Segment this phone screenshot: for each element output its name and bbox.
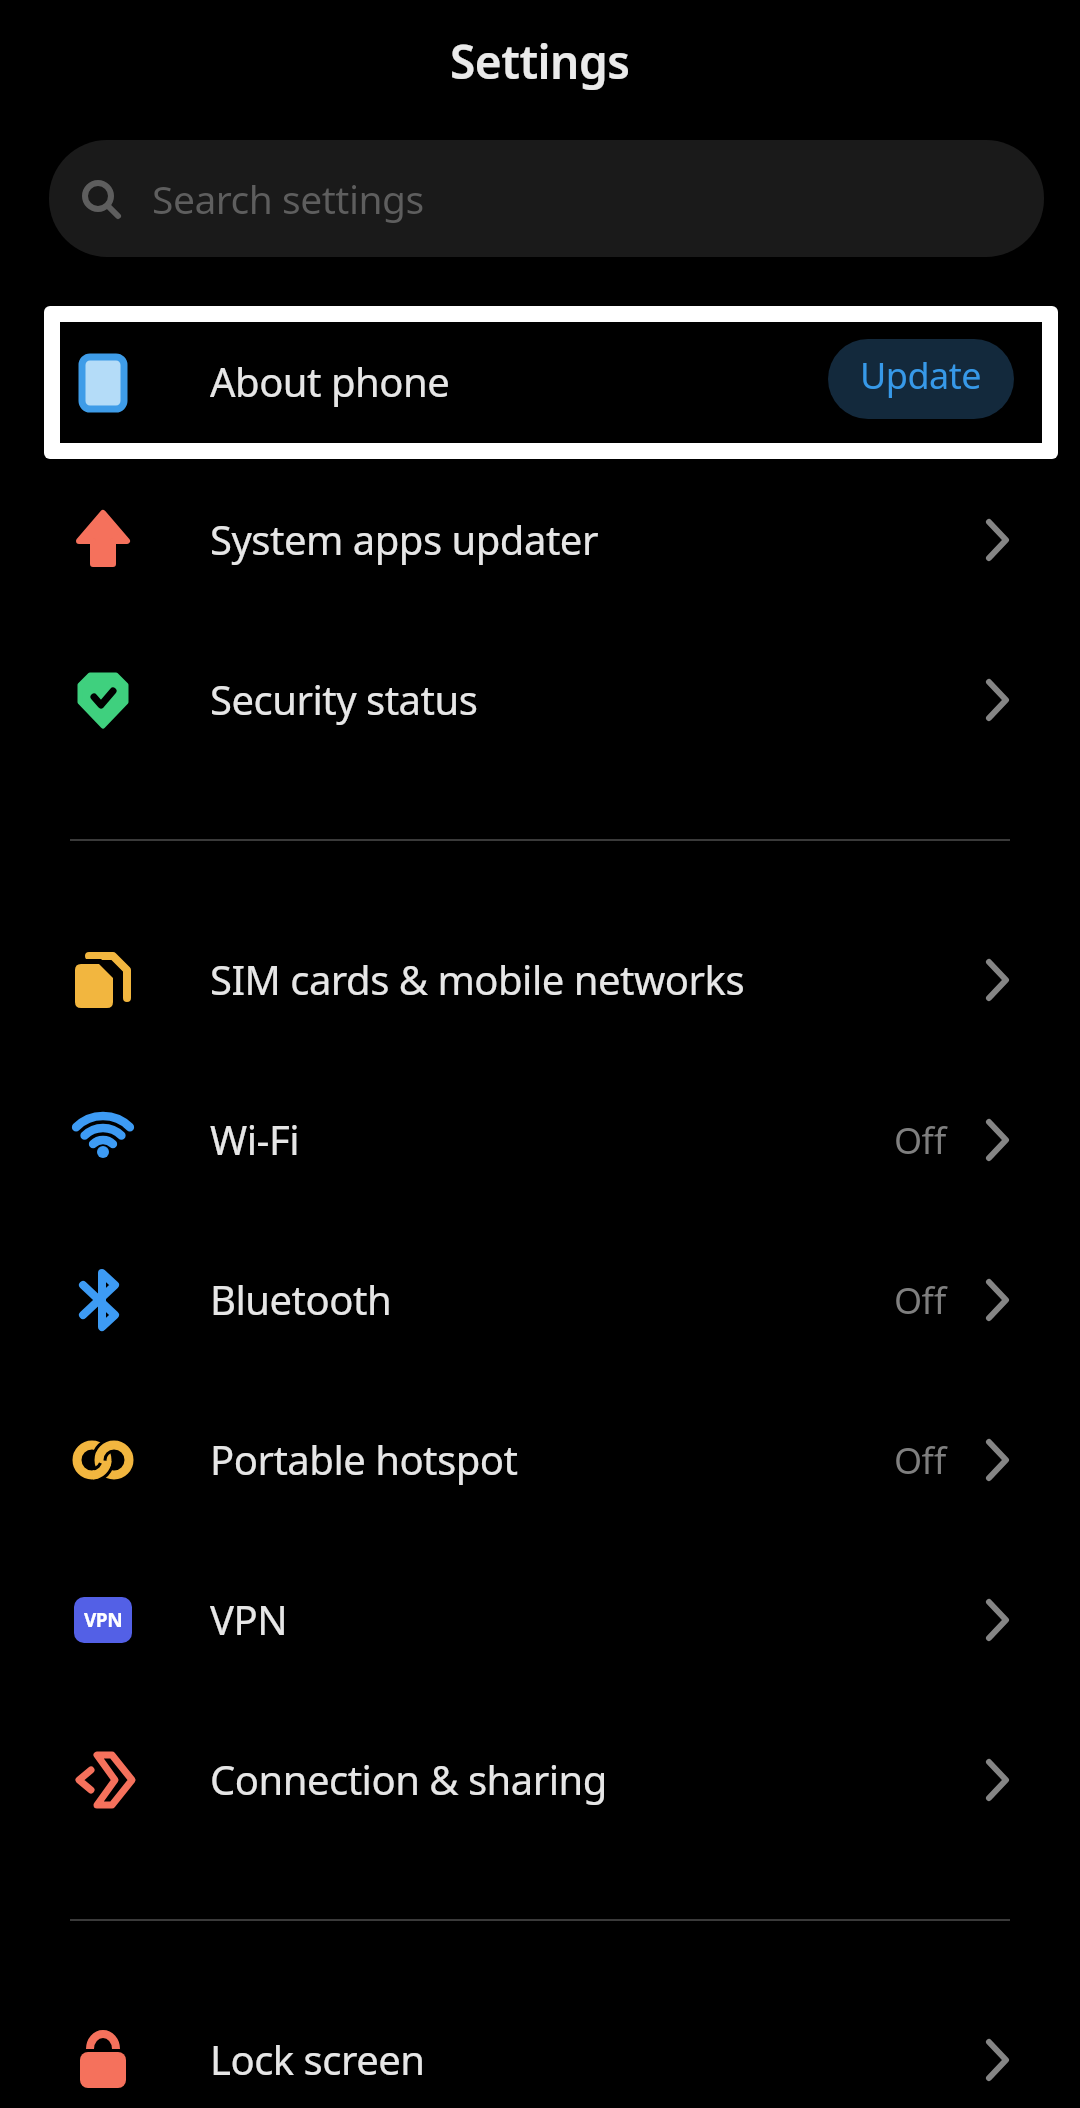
button[interactable]: Wi-Fi bbox=[0, 1060, 1080, 1220]
staticText: SIM cards & mobile networks bbox=[210, 952, 986, 1006]
button[interactable]: Security status bbox=[0, 620, 1080, 780]
staticText: Wi-Fi bbox=[210, 1112, 894, 1166]
button[interactable]: VPN bbox=[0, 1540, 1080, 1700]
staticText: Portable hotspot bbox=[210, 1432, 894, 1486]
button[interactable]: SIM cards & mobile networks bbox=[0, 900, 1080, 1060]
staticText: Off bbox=[894, 1436, 946, 1485]
staticText: About phone bbox=[210, 354, 828, 408]
staticText: Bluetooth bbox=[210, 1272, 894, 1326]
staticText: System apps updater bbox=[210, 512, 986, 566]
button[interactable]: Search settings bbox=[49, 140, 1044, 257]
staticText: Update bbox=[860, 351, 982, 400]
button[interactable]: System apps updater bbox=[0, 460, 1080, 620]
button[interactable]: Bluetooth bbox=[0, 1220, 1080, 1380]
staticText: Lock screen bbox=[210, 2032, 986, 2086]
staticText: Off bbox=[894, 1276, 946, 1325]
button[interactable]: Connection & sharing bbox=[0, 1700, 1080, 1860]
button[interactable]: Update bbox=[828, 339, 1014, 419]
button[interactable]: Portable hotspot bbox=[0, 1380, 1080, 1540]
staticText: VPN bbox=[210, 1592, 986, 1646]
button[interactable]: About phone bbox=[44, 306, 1058, 459]
button[interactable]: Lock screen bbox=[0, 1980, 1080, 2108]
staticText: Search settings bbox=[152, 172, 424, 225]
staticText: Connection & sharing bbox=[210, 1752, 986, 1806]
staticText: Off bbox=[894, 1116, 946, 1165]
staticText: Settings bbox=[450, 30, 630, 93]
staticText: Security status bbox=[210, 672, 986, 726]
staticText: VPN bbox=[84, 1607, 123, 1633]
